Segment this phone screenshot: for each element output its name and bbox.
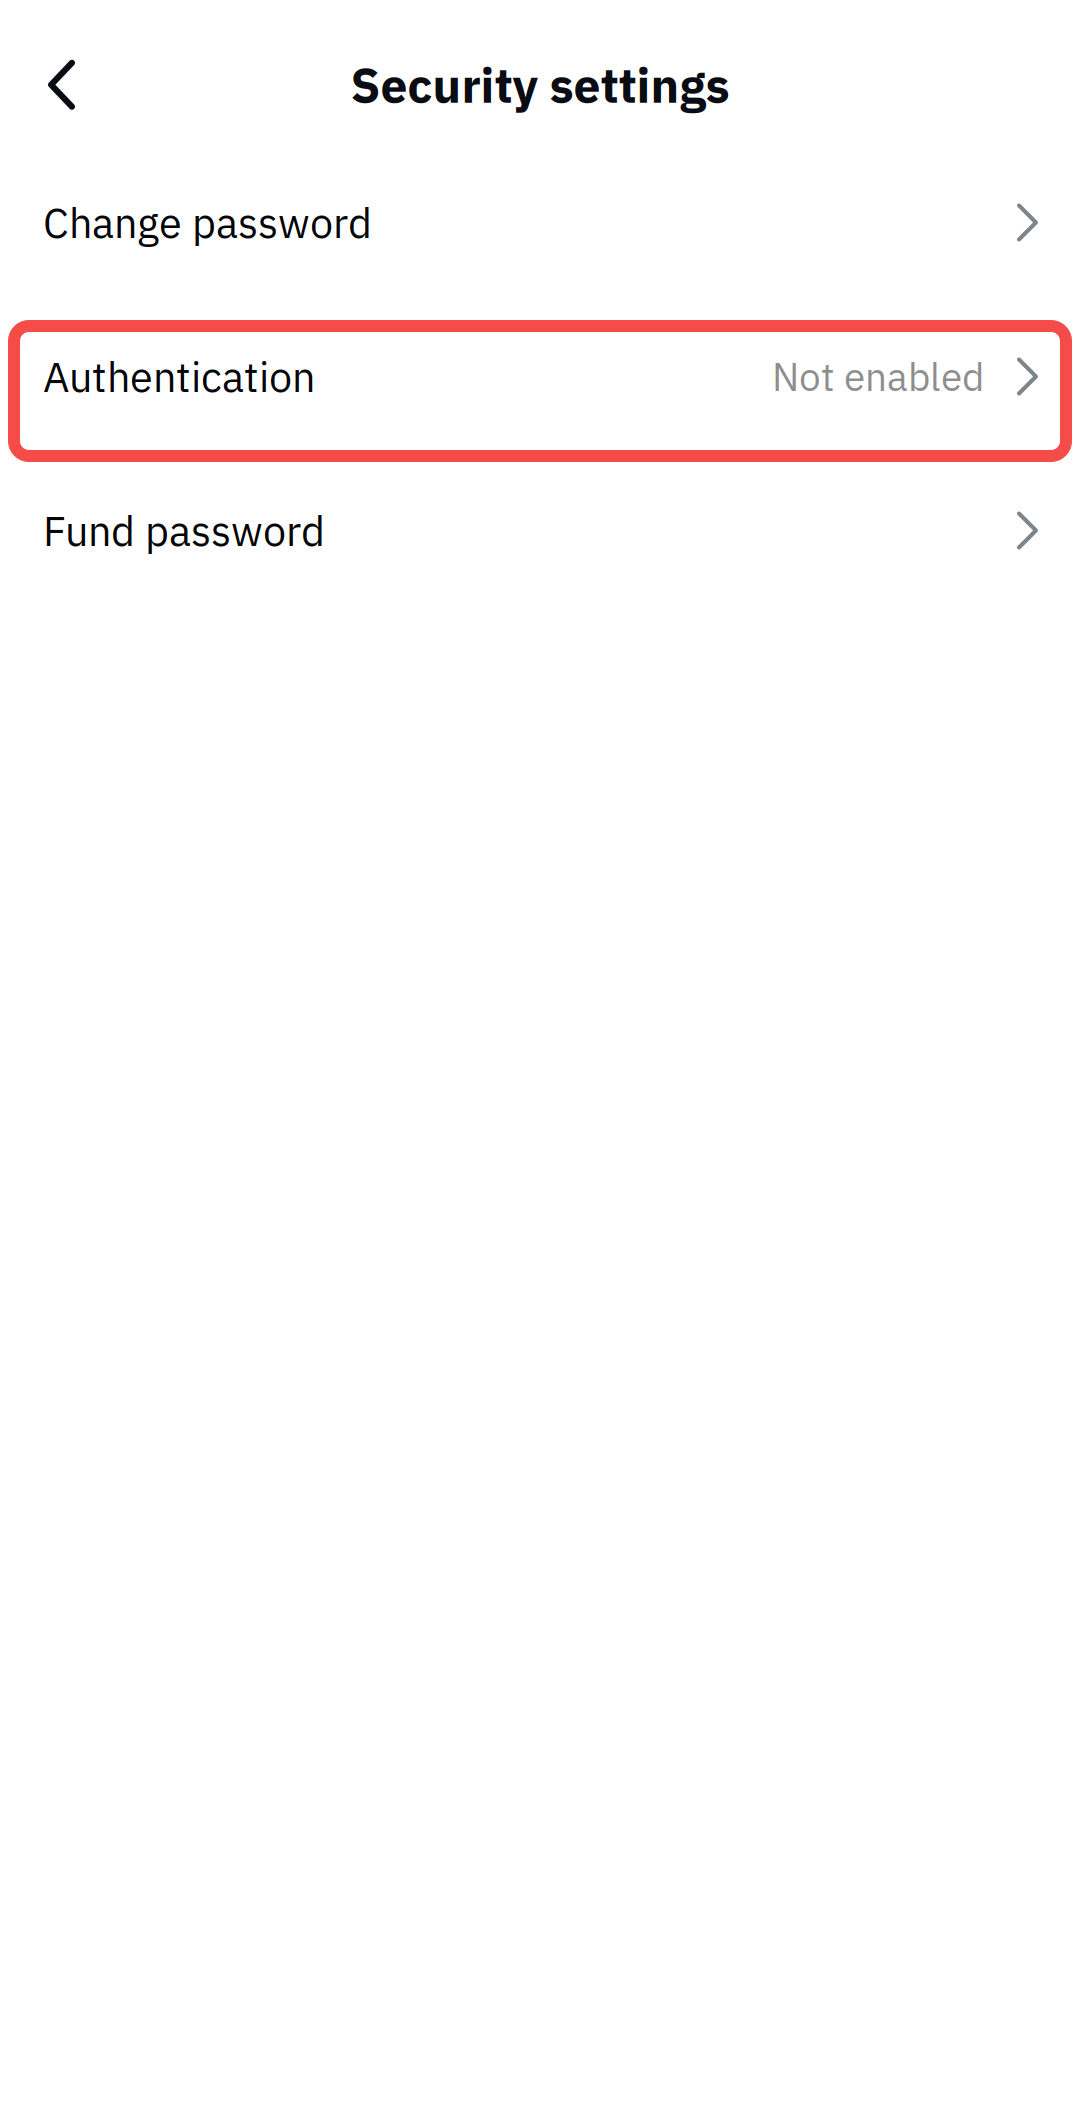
button[interactable]: Change password [0, 145, 1080, 299]
button[interactable]: Authentication [0, 299, 1080, 453]
staticText: Not enabled [772, 351, 984, 402]
button[interactable]: Fund password [0, 453, 1080, 607]
staticText: Security settings [350, 53, 729, 116]
staticText: Authentication [43, 350, 315, 403]
button[interactable]: Back [0, 30, 100, 140]
staticText: Change password [43, 196, 372, 249]
staticText: Fund password [43, 504, 325, 557]
